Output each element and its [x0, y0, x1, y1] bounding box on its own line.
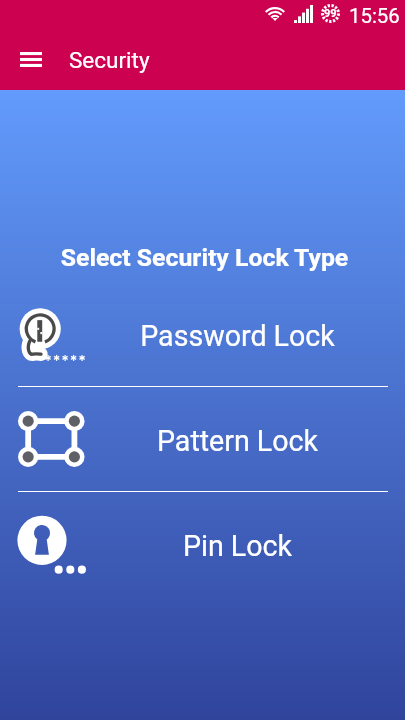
staticText: 99 — [324, 7, 337, 20]
button[interactable]: Password Lock — [0, 282, 405, 386]
button[interactable]: Pin Lock — [0, 492, 405, 596]
staticText: Pattern Lock — [70, 424, 405, 458]
staticText: 15:56 — [349, 4, 400, 28]
staticText: Password Lock — [70, 319, 405, 353]
staticText: Pin Lock — [70, 529, 405, 563]
button[interactable]: Open navigation menu — [7, 35, 55, 83]
button[interactable]: Pattern Lock — [0, 387, 405, 491]
staticText: Select Security Lock Type — [2, 243, 405, 272]
staticText: Security — [69, 47, 150, 73]
